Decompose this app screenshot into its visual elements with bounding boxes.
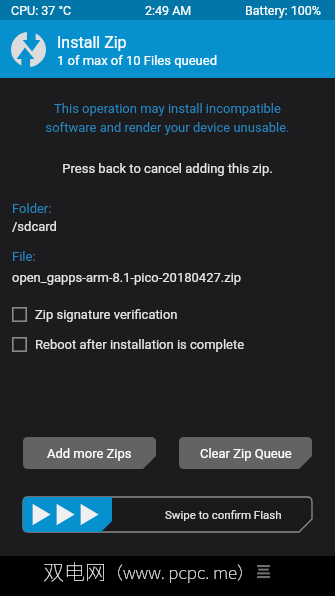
staticText: Battery: 100% <box>245 3 322 18</box>
staticText: File: <box>12 249 36 264</box>
button[interactable]: Swipe to confirm Flash <box>23 497 312 532</box>
staticText: 双电网 <box>43 556 106 586</box>
other: TWRP <box>11 32 46 67</box>
staticText: 2:49 AM <box>145 3 192 18</box>
button[interactable]: Add more Zips <box>23 437 156 469</box>
staticText: Press back to cancel adding this zip. <box>0 161 335 176</box>
staticText: Folder: <box>12 201 52 216</box>
button[interactable]: Reboot after installation is complete <box>0 333 335 355</box>
staticText: Install Zip <box>57 33 127 52</box>
staticText: This operation may install incompatible … <box>0 101 335 135</box>
staticText: Add more Zips <box>47 446 132 461</box>
staticText: CPU: 37 °C <box>11 3 72 18</box>
staticText: /sdcard <box>12 219 57 234</box>
staticText: Reboot after installation is complete <box>35 337 245 352</box>
button[interactable]: Zip signature verification <box>0 303 335 325</box>
staticText: open_gapps-arm-8.1-pico-20180427.zip <box>12 270 242 285</box>
staticText: Zip signature verification <box>35 307 178 322</box>
staticText: Clear Zip Queue <box>200 446 292 461</box>
staticText: Swipe to confirm Flash <box>165 508 282 521</box>
staticText: 1 of max of 10 Files queued <box>57 53 218 68</box>
button[interactable]: Clear Zip Queue <box>179 437 312 469</box>
staticText: （www. pcpc. me） <box>106 559 255 584</box>
